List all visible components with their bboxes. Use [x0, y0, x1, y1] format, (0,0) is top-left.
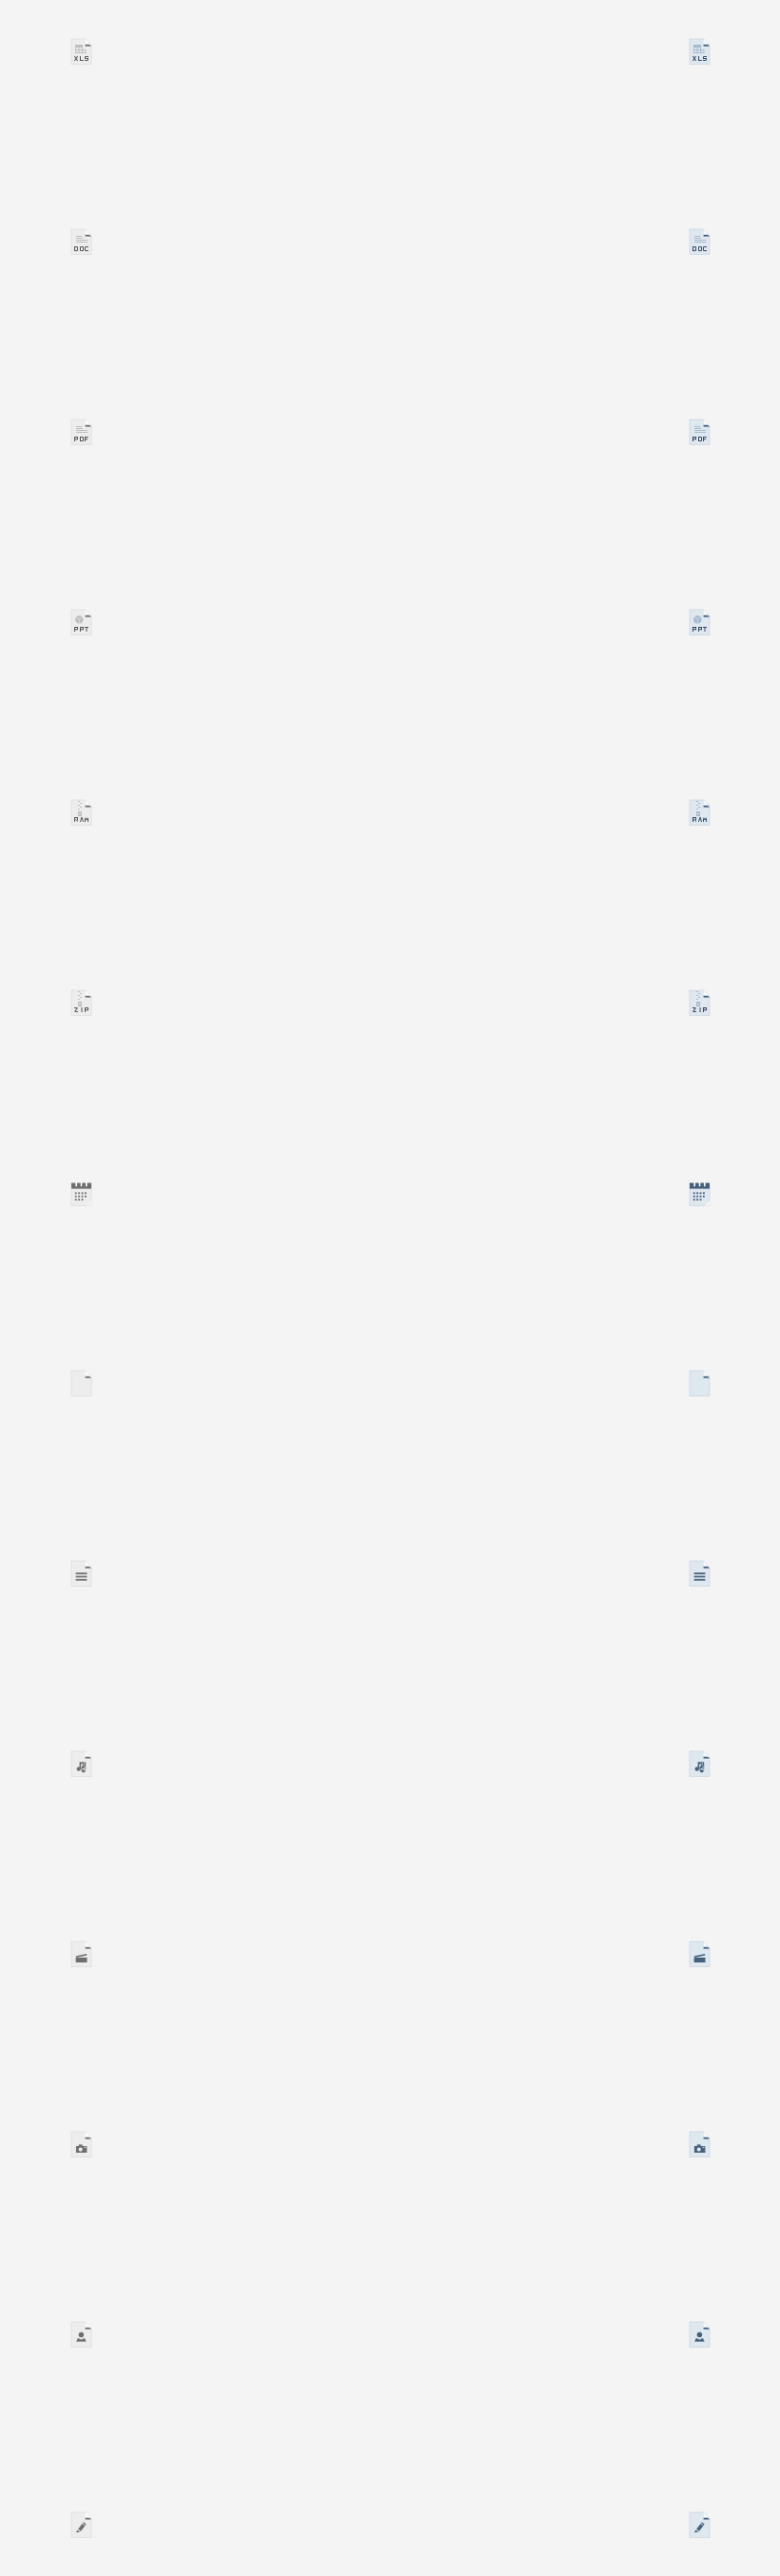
- button[interactable]: Document type icon: [71, 990, 91, 1015]
- button[interactable]: Document type icon, tinted: [690, 39, 710, 64]
- button[interactable]: Document type icon, tinted: [690, 1942, 710, 1967]
- button[interactable]: Document type icon: [71, 1751, 91, 1776]
- button[interactable]: Document type icon: [71, 2322, 91, 2347]
- button[interactable]: Document type icon, tinted: [690, 2512, 710, 2537]
- button[interactable]: Document type icon, tinted: [690, 1561, 710, 1586]
- button[interactable]: Document type icon: [71, 2512, 91, 2537]
- button[interactable]: Document type icon, tinted: [690, 1751, 710, 1776]
- button[interactable]: Document type icon, tinted: [690, 1181, 710, 1206]
- button[interactable]: Document type icon: [71, 2132, 91, 2157]
- button[interactable]: Document type icon: [71, 1181, 91, 1206]
- button[interactable]: Document type icon, tinted: [690, 610, 710, 635]
- button[interactable]: Document type icon: [71, 800, 91, 825]
- button[interactable]: Document type icon: [71, 420, 91, 445]
- button[interactable]: Document type icon: [71, 1942, 91, 1967]
- button[interactable]: Document type icon, tinted: [690, 229, 710, 254]
- button[interactable]: Document type icon, tinted: [690, 420, 710, 445]
- button[interactable]: Document type icon: [71, 1371, 91, 1396]
- button[interactable]: Document type icon: [71, 39, 91, 64]
- button[interactable]: Document type icon: [71, 1561, 91, 1586]
- button[interactable]: Document type icon: [71, 610, 91, 635]
- button[interactable]: Document type icon: [71, 229, 91, 254]
- button[interactable]: Document type icon, tinted: [690, 1371, 710, 1396]
- button[interactable]: Document type icon, tinted: [690, 990, 710, 1015]
- button[interactable]: Document type icon, tinted: [690, 2132, 710, 2157]
- button[interactable]: Document type icon, tinted: [690, 2322, 710, 2347]
- button[interactable]: Document type icon, tinted: [690, 800, 710, 825]
